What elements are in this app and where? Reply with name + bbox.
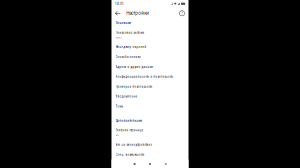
button[interactable]: Проверка безопасности xyxy=(111,82,188,91)
staticText: 14:31 xyxy=(115,2,124,5)
button[interactable]: Home xyxy=(142,159,158,168)
staticText: Настройки xyxy=(126,11,149,16)
staticText: Адреса и другие данные xyxy=(115,65,153,69)
button[interactable]: Все на своих устройствах xyxy=(111,140,188,150)
staticText: ? xyxy=(181,11,183,15)
button[interactable]: Поисковая система xyxy=(111,27,188,42)
button[interactable]: Адреса и другие данные xyxy=(111,62,188,72)
staticText: Способы оплаты xyxy=(115,55,140,59)
button[interactable]: Тема xyxy=(111,101,188,111)
staticText: Дополнительные xyxy=(115,119,142,123)
button[interactable]: Уведомления xyxy=(111,91,188,101)
button[interactable]: Главная страница xyxy=(111,125,188,140)
staticText: Вкл. xyxy=(115,134,119,136)
staticText: Проверка безопасности xyxy=(115,85,152,88)
staticText: Конфиденциальность и безопасность xyxy=(115,75,173,79)
staticText: Все на своих устройствах xyxy=(115,143,151,147)
button[interactable]: Back xyxy=(158,159,173,168)
button[interactable]: Back xyxy=(115,10,121,16)
button[interactable]: Recent apps xyxy=(127,159,142,168)
staticText: Уведомления xyxy=(115,95,137,98)
staticText: Менеджер паролей xyxy=(115,45,146,49)
button[interactable]: Help xyxy=(179,10,185,16)
button[interactable]: Конфиденциальность и безопасность xyxy=(111,72,188,82)
button[interactable]: Менеджер паролей xyxy=(111,42,188,52)
staticText: Поисковая система xyxy=(115,31,144,34)
button[interactable]: Спец. возможности xyxy=(111,150,188,159)
staticText: Спец. возможности xyxy=(115,153,144,156)
staticText: Тема xyxy=(115,104,123,108)
staticText: Главная страница xyxy=(115,128,143,132)
staticText: Основные xyxy=(115,21,131,25)
button[interactable]: Способы оплаты xyxy=(111,52,188,62)
staticText: Google xyxy=(115,36,121,39)
